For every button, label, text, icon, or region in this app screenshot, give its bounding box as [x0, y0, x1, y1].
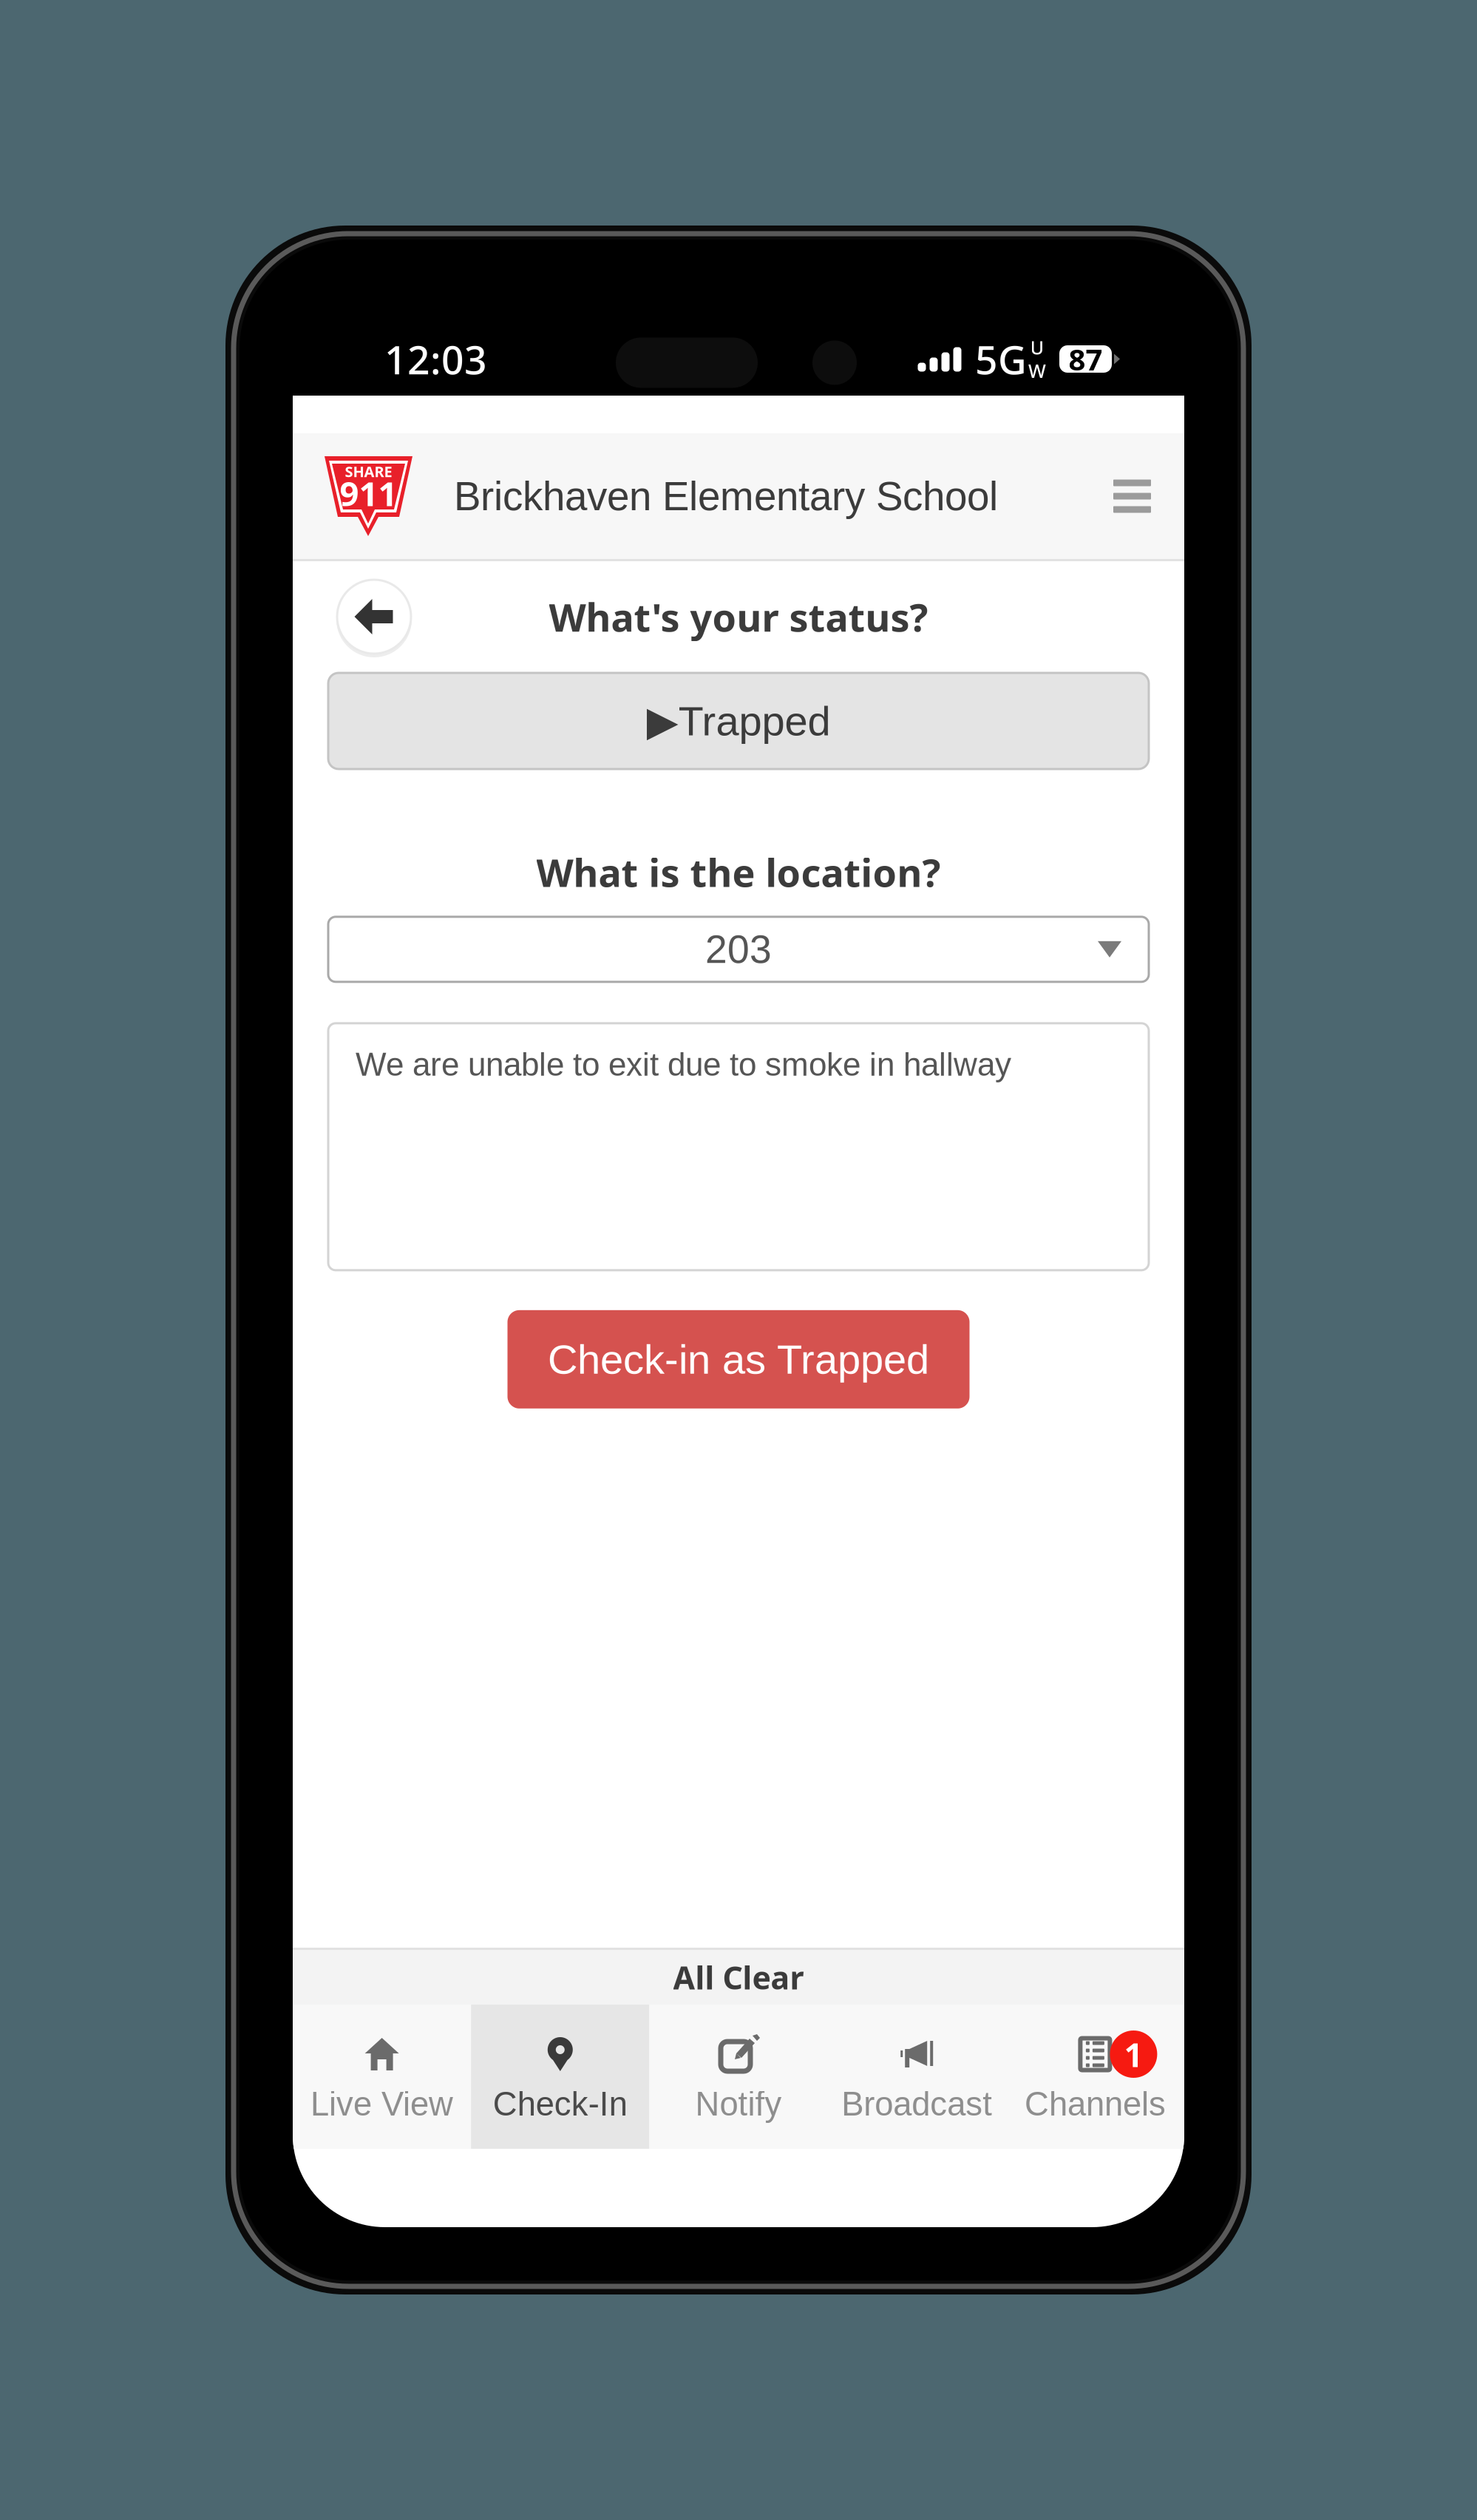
staticText: Notify: [695, 2085, 782, 2123]
button[interactable]: Live View: [293, 2005, 471, 2149]
staticText: 5G: [975, 332, 1027, 386]
button[interactable]: Check-In: [471, 2005, 649, 2149]
button[interactable]: ▶Trapped: [328, 673, 1149, 769]
staticText: Brickhaven Elementary School: [454, 474, 998, 519]
staticText: 12:03: [384, 332, 487, 386]
staticText: ▶Trapped: [646, 697, 831, 745]
staticText: Check-in as Trapped: [548, 1336, 929, 1382]
button[interactable]: Share911: [293, 433, 412, 559]
button[interactable]: Check-in as Trapped: [507, 1310, 970, 1408]
button[interactable]: 1: [1006, 2005, 1184, 2149]
staticText: Live View: [311, 2085, 453, 2123]
staticText: Check-In: [493, 2085, 627, 2123]
staticText: We are unable to exit due to smoke in ha…: [356, 1046, 1011, 1083]
staticText: 911: [340, 470, 397, 516]
button[interactable]: Back: [335, 577, 413, 656]
staticText: Channels: [1025, 2085, 1166, 2123]
staticText: 1: [1124, 2031, 1143, 2077]
button[interactable]: 203: [328, 917, 1149, 982]
button[interactable]: Broadcast: [828, 2005, 1006, 2149]
staticText: W: [1028, 358, 1046, 383]
staticText: What's your status?: [549, 591, 928, 643]
staticText: 203: [705, 927, 772, 971]
staticText: 87: [1069, 339, 1103, 379]
staticText: Broadcast: [841, 2085, 992, 2123]
staticText: All Clear: [673, 1956, 804, 1999]
staticText: What is the location?: [536, 846, 941, 898]
button[interactable]: Menu: [1080, 433, 1184, 559]
button[interactable]: Notify: [649, 2005, 828, 2149]
staticText: SHARE: [345, 461, 392, 481]
staticText: U: [1030, 335, 1044, 360]
